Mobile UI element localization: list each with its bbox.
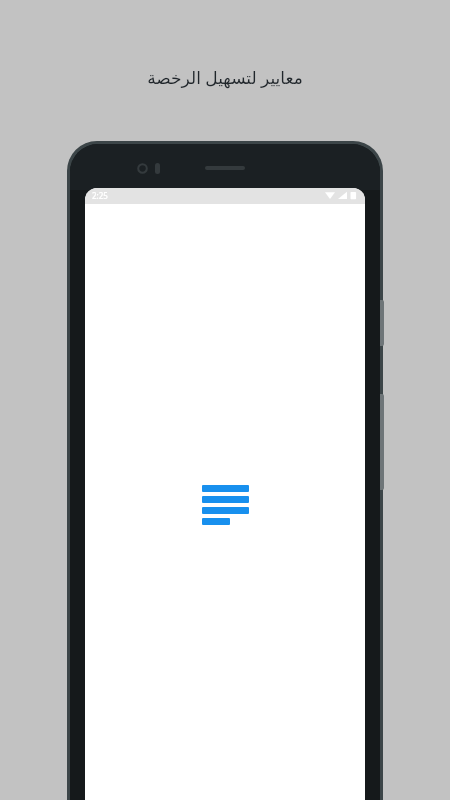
button[interactable]: App logo	[85, 188, 365, 800]
button[interactable]: معايير لتسهيل الرخصة	[0, 62, 450, 92]
staticText: معايير لتسهيل الرخصة	[147, 66, 303, 89]
staticText: 2:25	[92, 190, 108, 201]
other: Volume button	[380, 394, 384, 490]
other: Power button	[380, 300, 384, 346]
